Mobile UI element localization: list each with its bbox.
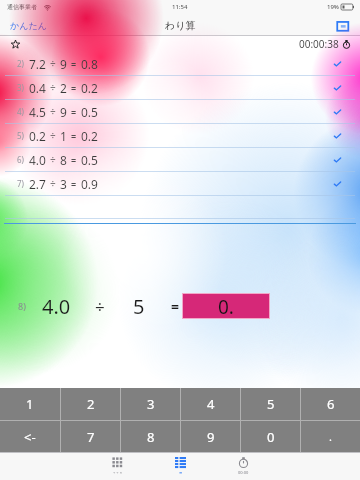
staticText: 0.2 (29, 128, 46, 144)
button[interactable]: 8) (0, 289, 360, 323)
button[interactable]: . (301, 421, 360, 452)
staticText: <- (24, 428, 36, 446)
staticText: = (71, 178, 77, 190)
staticText: 8) (18, 300, 26, 312)
staticText: 2 (60, 80, 67, 96)
staticText: 2.7 (29, 176, 46, 192)
button[interactable]: 3) (5, 76, 355, 99)
button[interactable]: かんたん (10, 20, 47, 31)
staticText: ÷ (50, 177, 56, 191)
button[interactable]: 1 (0, 388, 60, 420)
staticText: ÷ (50, 57, 56, 71)
staticText: 3 (147, 395, 155, 413)
staticText: 9 (60, 56, 67, 72)
staticText: 0.9 (81, 176, 98, 192)
staticText: 1 (26, 395, 34, 413)
staticText: 0 (267, 428, 275, 446)
staticText: = (71, 82, 77, 94)
button[interactable]: 3 (121, 388, 180, 420)
staticText: 4) (17, 106, 24, 117)
staticText: 0.5 (81, 152, 98, 168)
button[interactable]: 4 (181, 388, 240, 420)
staticText: ÷ (50, 129, 56, 143)
staticText: 7.2 (29, 56, 46, 72)
button[interactable]: Layout (335, 17, 351, 33)
staticText: 9 (207, 428, 215, 446)
staticText: 6) (17, 154, 24, 165)
staticText: 19% (327, 3, 339, 11)
staticText: = (71, 58, 77, 70)
staticText: 4.5 (29, 104, 46, 120)
button[interactable]: 5 (241, 388, 300, 420)
staticText: 9 (60, 104, 67, 120)
staticText: 5 (267, 395, 275, 413)
staticText: 3 (60, 176, 67, 192)
staticText: 5) (17, 130, 24, 141)
staticText: ÷ (50, 153, 56, 167)
staticText: 6 (327, 395, 335, 413)
staticText: ÷ (95, 295, 105, 318)
staticText: 2 (87, 395, 95, 413)
staticText: 0.2 (81, 128, 98, 144)
staticText: 11:54 (172, 3, 188, 11)
staticText: 1 (60, 128, 67, 144)
staticText: 0.5 (81, 104, 98, 120)
staticText: = (71, 106, 77, 118)
button[interactable]: 5) (5, 124, 355, 147)
staticText: 0.2 (81, 80, 98, 96)
staticText: . (329, 429, 332, 444)
staticText: 8 (147, 428, 155, 446)
button[interactable]: 2 (61, 388, 120, 420)
button[interactable]: 2) (5, 52, 355, 75)
staticText: わり算 (165, 19, 196, 32)
staticText: 4.0 (29, 152, 46, 168)
staticText: 3) (17, 82, 24, 93)
staticText: 0.4 (29, 80, 46, 96)
staticText: 8 (60, 152, 67, 168)
button[interactable]: 8 (121, 421, 180, 452)
staticText: = (71, 154, 77, 166)
staticText: 7) (17, 178, 24, 189)
button[interactable]: keypad (86, 452, 149, 480)
button[interactable]: list (149, 452, 212, 480)
staticText: 00:00:38 (299, 37, 339, 51)
button[interactable]: 0 (241, 421, 300, 452)
button[interactable]: timer (212, 452, 275, 480)
button[interactable]: 7) (5, 172, 355, 195)
staticText: 4.0 (42, 293, 71, 320)
other: Favorite (11, 40, 20, 49)
staticText: 00:00 (238, 470, 249, 475)
button[interactable]: 6) (5, 148, 355, 171)
staticText: 4 (207, 395, 215, 413)
staticText: 2) (17, 58, 24, 69)
button[interactable]: 4) (5, 100, 355, 123)
staticText: 0. (218, 294, 234, 318)
button[interactable]: <- (0, 421, 60, 452)
button[interactable]: 9 (181, 421, 240, 452)
button[interactable]: 7 (61, 421, 120, 452)
staticText: 7 (87, 428, 95, 446)
staticText: = (71, 130, 77, 142)
staticText: ≡ (179, 470, 183, 475)
staticText: = (171, 297, 180, 316)
button[interactable]: 6 (301, 388, 360, 420)
staticText: ÷ (50, 105, 56, 119)
staticText: 5 (133, 293, 145, 320)
staticText: 通信事業者 (7, 3, 37, 11)
staticText: ÷ (50, 81, 56, 95)
staticText: 0.8 (81, 56, 98, 72)
staticText: ÷ ÷ × (113, 470, 122, 475)
